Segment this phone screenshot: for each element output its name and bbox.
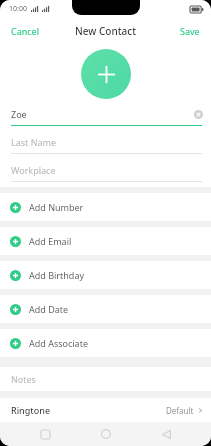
staticText: Add Email [29,235,72,247]
staticText: Cancel [11,25,40,37]
button[interactable]: Add photo [81,49,131,99]
staticText: Save [180,25,200,37]
staticText: Zoe [11,108,27,120]
button[interactable]: Workplace [0,159,211,187]
button[interactable]: Zoe [0,103,211,131]
button[interactable]: Add Birthday [0,261,211,289]
button[interactable]: Back [151,422,181,446]
staticText: Workplace [11,164,56,176]
button[interactable]: Save [169,20,211,42]
button[interactable]: Add Date [0,295,211,323]
button[interactable]: Add Email [0,227,211,255]
staticText: Ringtone [11,404,51,416]
staticText: Add Date [29,303,69,315]
staticText: New Contact [75,24,136,38]
button[interactable]: Clear [191,107,205,121]
staticText: Last Name [11,136,57,148]
button[interactable]: Recent apps [30,422,60,446]
button[interactable]: Add Number [0,193,211,221]
staticText: Add Number [29,201,84,213]
button[interactable]: Home [91,422,121,446]
button[interactable]: Cancel [0,20,51,42]
button[interactable]: Add Associate [0,329,211,357]
staticText: Notes [11,373,36,385]
button[interactable]: Notes [0,367,211,391]
button[interactable]: Ringtone [0,398,211,422]
staticText: 10:00 [9,4,27,14]
staticText: Add Associate [29,337,88,349]
staticText: Default [166,405,194,416]
button[interactable]: Last Name [0,131,211,159]
staticText: Add Birthday [29,269,85,281]
